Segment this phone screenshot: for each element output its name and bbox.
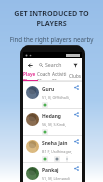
staticText: 56, M, S.Kindi, Sector 14, Navi Mumbai, … bbox=[42, 122, 74, 127]
button[interactable]: Share bbox=[74, 166, 79, 171]
button[interactable]: Guru Prasath bbox=[23, 82, 82, 108]
button[interactable]: Hedang Chavan bbox=[23, 109, 82, 135]
staticText: Clubs bbox=[69, 73, 81, 79]
staticText: Players bbox=[23, 71, 37, 80]
staticText: 51, B, Offfdhalli, Bengaluru bbox=[42, 95, 74, 100]
staticText: Find the right players nearby for your f… bbox=[6, 35, 97, 62]
button[interactable]: Coaches bbox=[37, 71, 52, 80]
staticText: Guru Prasath bbox=[42, 86, 74, 93]
button[interactable]: Pankaj Nalvekar bbox=[23, 163, 82, 182]
staticText: B1 F, Usdhinagar, Bengaluru, Karnataka I… bbox=[42, 149, 74, 154]
staticText: Pankaj Nalvekar bbox=[42, 167, 74, 174]
staticText: Activities bbox=[52, 71, 67, 80]
button[interactable]: Share bbox=[74, 112, 79, 117]
staticText: Search bbox=[45, 61, 62, 68]
button[interactable]: Search bbox=[39, 61, 71, 68]
staticText: Sneha Jain Karnavat bbox=[42, 140, 74, 147]
staticText: Hedang Chavan bbox=[42, 113, 74, 120]
button[interactable]: Sneha Jain Karnavat bbox=[23, 136, 82, 162]
staticText: GET INTRODUCED TO PLAYERS bbox=[4, 8, 99, 28]
button[interactable]: Activities bbox=[52, 71, 67, 80]
staticText: 51, M, Lilenwadi Manila Layout, Bengalur… bbox=[42, 176, 74, 181]
button[interactable]: Filter bbox=[71, 61, 79, 69]
staticText: Coaches bbox=[37, 71, 52, 80]
button[interactable]: Share bbox=[74, 85, 79, 90]
button[interactable]: Back bbox=[26, 61, 34, 69]
button[interactable]: Clubs bbox=[67, 71, 82, 80]
button[interactable]: Players bbox=[23, 71, 37, 80]
button[interactable]: Share bbox=[74, 139, 79, 144]
